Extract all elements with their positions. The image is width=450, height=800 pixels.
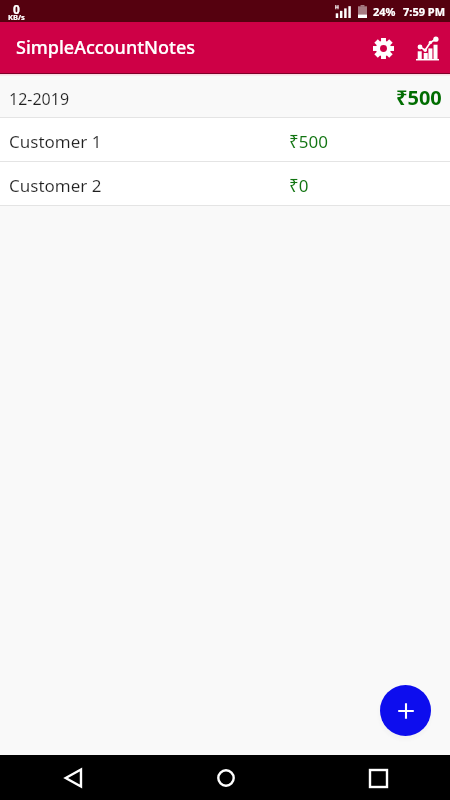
button[interactable]: Customer 2	[0, 162, 450, 205]
button[interactable]: Customer 1	[0, 118, 450, 161]
staticText: ₹500	[289, 130, 328, 153]
button[interactable]: Statistics	[405, 26, 449, 70]
button[interactable]: Back	[53, 758, 93, 798]
button[interactable]: Home	[206, 758, 246, 798]
staticText: 12-2019	[9, 88, 70, 110]
button[interactable]: Recents	[358, 758, 398, 798]
staticText: Customer 1	[9, 130, 102, 153]
staticText: 7:59 PM	[403, 4, 446, 19]
staticText: SimpleAccountNotes	[16, 35, 196, 60]
staticText: Customer 2	[9, 174, 102, 197]
button[interactable]: 12-2019	[0, 76, 450, 117]
staticText: KB/s	[8, 12, 25, 22]
staticText: 0	[13, 1, 20, 17]
staticText: ₹500	[396, 84, 442, 111]
staticText: 24%	[373, 4, 396, 19]
staticText: ₹0	[289, 174, 309, 197]
button[interactable]: Settings	[361, 26, 405, 70]
button[interactable]: Add	[380, 685, 431, 736]
